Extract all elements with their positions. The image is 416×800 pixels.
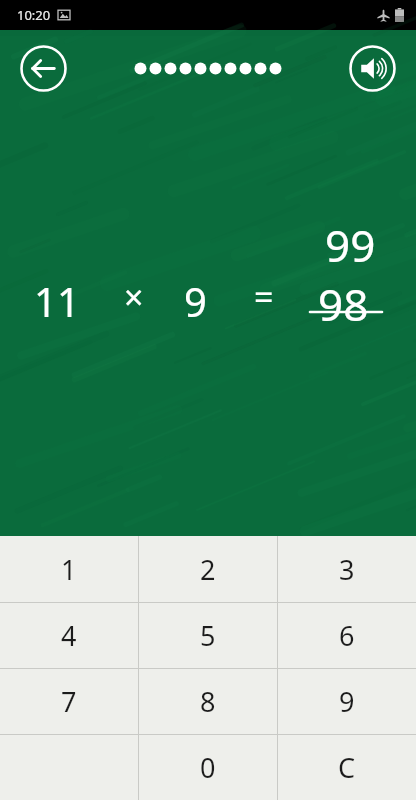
staticText: C <box>338 749 356 786</box>
staticText: 98 <box>318 274 369 334</box>
button[interactable]: 5 <box>139 603 277 668</box>
staticText: 8 <box>200 683 216 720</box>
button[interactable]: 6 <box>278 603 416 668</box>
button[interactable]: 1 <box>0 536 138 602</box>
staticText: 6 <box>339 617 355 654</box>
button[interactable]: 7 <box>0 669 138 734</box>
staticText: 2 <box>200 551 216 588</box>
button[interactable]: Sound <box>349 45 396 92</box>
button[interactable]: 4 <box>0 603 138 668</box>
button[interactable]: Back <box>20 45 67 92</box>
staticText: 9 <box>339 683 355 720</box>
staticText: 1 <box>61 551 77 588</box>
staticText: 99 <box>325 215 376 275</box>
staticText: 0 <box>200 749 216 786</box>
button[interactable]: 0 <box>139 735 277 800</box>
button[interactable]: 3 <box>278 536 416 602</box>
button[interactable]: 8 <box>139 669 277 734</box>
staticText: 5 <box>200 617 216 654</box>
staticText: 10:20 <box>17 6 51 24</box>
staticText: 9 <box>184 274 207 328</box>
staticText: = <box>254 274 274 320</box>
staticText: 4 <box>61 617 77 654</box>
staticText: 3 <box>339 551 355 588</box>
button[interactable]: 2 <box>139 536 277 602</box>
staticText: 11 <box>34 274 80 328</box>
staticText: 7 <box>61 683 77 720</box>
button[interactable]: 9 <box>278 669 416 734</box>
staticText: × <box>124 274 144 320</box>
button[interactable]: C <box>278 735 416 800</box>
